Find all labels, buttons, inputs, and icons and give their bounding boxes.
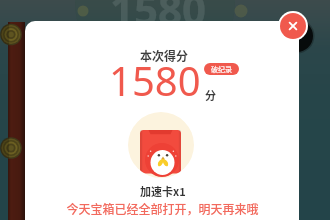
button[interactable]: 破纪录 [204,63,239,75]
staticText: 分 [205,87,216,103]
staticText: 破纪录 [211,64,232,74]
staticText: 1580 [109,53,201,107]
staticText: 1580 [110,0,207,37]
staticText: 今天宝箱已经全部打开，明天再来哦 [66,200,259,217]
staticText: 本次得分 [140,47,189,64]
staticText: 加速卡x1 [140,183,186,199]
button[interactable]: Close [280,13,306,39]
